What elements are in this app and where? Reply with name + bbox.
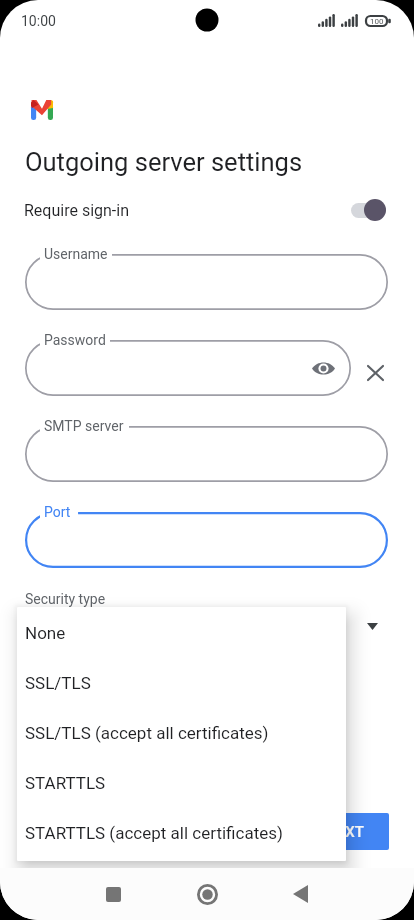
button[interactable]: NEXT — [301, 813, 389, 850]
button[interactable]: Recent apps — [93, 874, 133, 914]
button[interactable]: SSL/TLS (accept all certificates) — [17, 708, 346, 758]
button[interactable]: None — [17, 608, 346, 658]
staticText: SSL/TLS — [25, 673, 91, 693]
staticText: NEXT — [326, 823, 364, 841]
staticText: Port — [44, 504, 71, 520]
staticText: None — [25, 623, 66, 643]
button[interactable] — [346, 196, 392, 224]
button[interactable]: Clear — [358, 356, 392, 390]
staticText: Outgoing server settings — [25, 147, 303, 177]
staticText: Require sign-in — [24, 201, 129, 220]
button[interactable]: STARTTLS — [17, 758, 346, 808]
button[interactable]: Show password — [309, 354, 337, 382]
button[interactable]: Require sign-in — [0, 192, 414, 228]
staticText: SSL/TLS (accept all certificates) — [25, 723, 269, 743]
button[interactable] — [25, 254, 388, 310]
staticText: STARTTLS — [25, 773, 106, 793]
button[interactable] — [25, 512, 388, 568]
button[interactable]: Expand security type — [360, 614, 384, 638]
button[interactable] — [25, 426, 388, 482]
button[interactable]: Home — [187, 874, 227, 914]
button[interactable]: STARTTLS (accept all certificates) — [17, 808, 346, 858]
staticText: 10:00 — [21, 13, 56, 29]
staticText: Password — [44, 332, 106, 348]
staticText: Security type — [25, 591, 106, 607]
staticText: Username — [44, 246, 108, 262]
staticText: 100 — [370, 17, 384, 26]
button[interactable]: Show password — [25, 340, 351, 396]
staticText: STARTTLS (accept all certificates) — [25, 823, 283, 843]
staticText: SMTP server — [44, 418, 124, 434]
button[interactable]: SSL/TLS — [17, 658, 346, 708]
button[interactable]: Back — [280, 874, 320, 914]
